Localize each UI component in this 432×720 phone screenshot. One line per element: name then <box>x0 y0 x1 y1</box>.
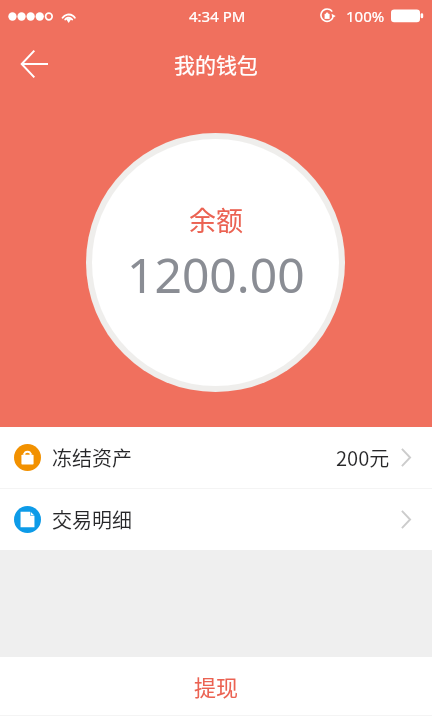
staticText: 冻结资产 <box>52 443 132 472</box>
button[interactable]: 提现 <box>0 657 432 715</box>
button[interactable]: 冻结资产 <box>0 427 432 488</box>
button[interactable]: 交易明细 <box>0 489 432 550</box>
staticText: 4:34 PM <box>189 6 246 26</box>
button[interactable]: Back <box>10 40 58 88</box>
staticText: 200元 <box>336 443 390 472</box>
staticText: 100% <box>346 6 385 26</box>
staticText: 提现 <box>194 670 239 702</box>
staticText: 余额 <box>189 200 243 239</box>
staticText: 1200.00 <box>127 242 305 307</box>
staticText: 我的钱包 <box>174 49 258 79</box>
staticText: 交易明细 <box>52 505 132 534</box>
